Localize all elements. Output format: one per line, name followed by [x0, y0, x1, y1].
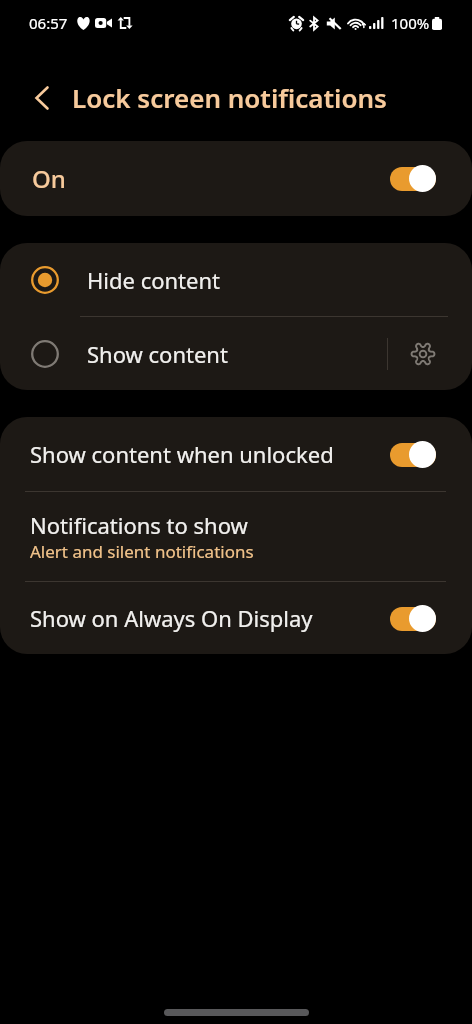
button[interactable]: Back: [22, 78, 62, 118]
staticText: 06:57: [29, 13, 68, 33]
staticText: 100%: [391, 13, 430, 33]
staticText: Alert and silent notifications: [30, 540, 254, 563]
staticText: Notifications to show: [30, 510, 248, 540]
staticText: Hide content: [87, 265, 220, 295]
button[interactable]: Show content when unlocked: [0, 417, 472, 491]
button[interactable]: Notifications to show: [0, 492, 472, 581]
staticText: Show content when unlocked: [30, 439, 334, 469]
staticText: Show content: [87, 339, 228, 369]
staticText: On: [32, 162, 66, 195]
button[interactable]: Notification settings: [388, 317, 472, 390]
button[interactable]: Hide content: [0, 243, 472, 316]
button[interactable]: Show on Always On Display: [0, 582, 472, 654]
staticText: Show on Always On Display: [30, 603, 313, 633]
button[interactable]: On: [0, 141, 472, 216]
button[interactable]: Show content: [0, 317, 387, 390]
staticText: Lock screen notifications: [72, 80, 387, 115]
